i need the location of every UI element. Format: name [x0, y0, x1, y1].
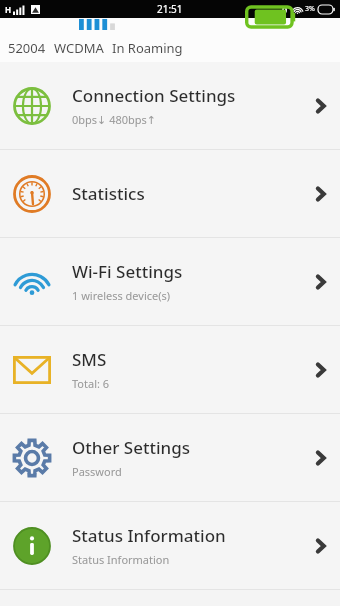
button[interactable]: Wi-Fi Settings [0, 238, 340, 325]
staticText: Wi-Fi Settings [72, 260, 183, 283]
button[interactable]: SMS [0, 326, 340, 413]
button[interactable]: Status Information [0, 502, 340, 589]
staticText: 0 [282, 3, 288, 15]
staticText: Total: 6 [72, 376, 110, 391]
staticText: Connection Settings [72, 84, 236, 107]
staticText: 21:51 [157, 2, 183, 16]
staticText: SMS [72, 348, 107, 371]
staticText: H [5, 4, 12, 15]
staticText: 52004 [8, 39, 46, 57]
staticText: WCDMA [54, 39, 104, 57]
button[interactable]: Connection Settings [0, 62, 340, 149]
staticText: 3% [305, 4, 315, 14]
button[interactable]: Statistics [0, 150, 340, 237]
staticText: In Roaming [112, 39, 183, 57]
staticText: 1 wireless device(s) [72, 288, 171, 303]
button[interactable]: Other Settings [0, 414, 340, 501]
staticText: Statistics [72, 182, 145, 205]
staticText: Status Information [72, 552, 170, 567]
staticText: Status Information [72, 524, 226, 547]
staticText: Other Settings [72, 436, 191, 459]
staticText: Password [72, 464, 122, 479]
staticText: 0bps↓ 480bps↑ [72, 112, 157, 127]
